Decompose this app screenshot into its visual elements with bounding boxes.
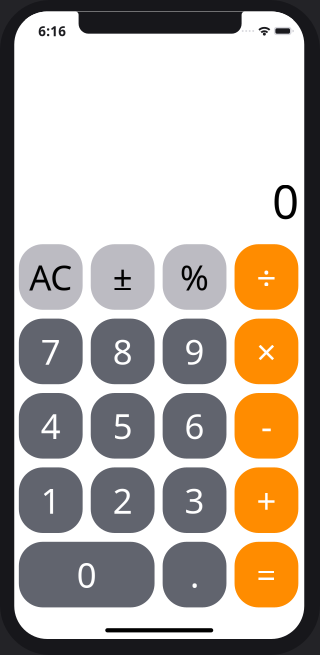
button[interactable]: ÷ [234,244,298,310]
button[interactable]: × [234,319,298,384]
staticText: . [190,552,199,598]
button[interactable]: + [234,467,298,533]
staticText: + [256,477,276,523]
staticText: 2 [113,477,133,523]
staticText: 9 [184,328,204,374]
staticText: ÷ [256,254,276,300]
staticText: 0 [272,170,299,232]
staticText: 6:16 [38,22,66,40]
staticText: % [180,254,209,300]
button[interactable]: 2 [91,467,155,533]
staticText: - [261,403,272,449]
button[interactable]: AC [19,244,83,310]
button[interactable]: 9 [163,319,226,384]
staticText: 8 [113,328,133,374]
staticText: 0 [77,552,97,598]
button[interactable]: 5 [91,393,155,459]
button[interactable]: . [163,542,226,607]
button[interactable]: ± [91,244,155,310]
staticText: 1 [41,477,61,523]
button[interactable]: 3 [163,467,226,533]
button[interactable]: % [163,244,226,310]
button[interactable]: = [234,542,298,607]
button[interactable]: 1 [19,467,83,533]
staticText: 3 [184,477,204,523]
staticText: × [256,328,276,374]
staticText: 7 [41,328,61,374]
button[interactable]: 0 [19,542,155,607]
button[interactable]: 6 [163,393,226,459]
staticText: AC [29,254,72,300]
button[interactable]: 4 [19,393,83,459]
button[interactable]: 7 [19,319,83,384]
staticText: ± [113,254,133,300]
button[interactable]: 8 [91,319,155,384]
staticText: = [256,552,276,598]
button[interactable]: - [234,393,298,459]
staticText: 4 [41,403,61,449]
staticText: 6 [184,403,204,449]
staticText: 5 [113,403,133,449]
